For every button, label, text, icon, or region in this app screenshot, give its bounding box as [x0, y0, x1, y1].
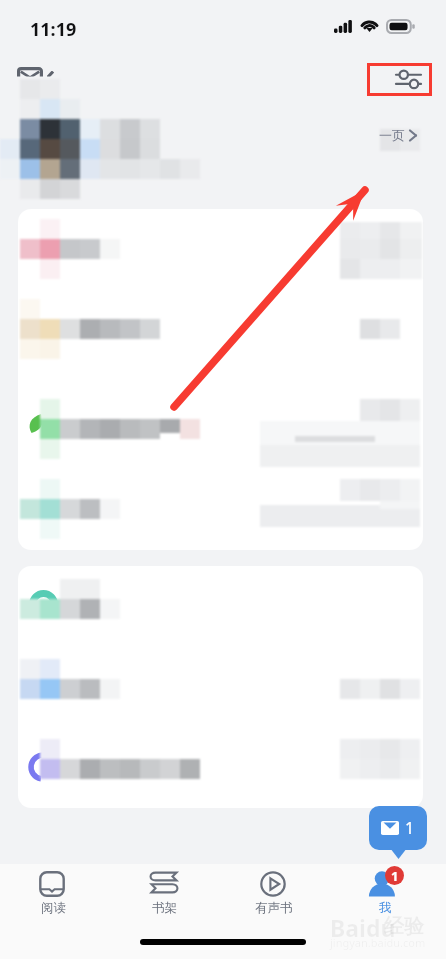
staticText: 我 — [379, 900, 392, 916]
button[interactable]: 一页 — [379, 127, 418, 143]
button[interactable]: 我 — [353, 866, 417, 922]
button[interactable]: 有声书 — [242, 866, 306, 922]
staticText: 1 — [405, 817, 415, 839]
staticText: 阅读 — [41, 900, 66, 916]
button[interactable]: 阅读 — [21, 866, 85, 922]
staticText: 有声书 — [255, 900, 293, 916]
staticText: 书架 — [152, 900, 177, 916]
staticText: 一页 — [379, 127, 405, 143]
staticText: Baidu — [330, 912, 396, 943]
button[interactable] — [18, 209, 423, 550]
button[interactable]: Messages — [369, 806, 427, 850]
button[interactable]: Settings — [367, 63, 432, 96]
staticText: 经验 — [384, 914, 424, 939]
staticText: jingyan.baidu.com — [330, 935, 426, 950]
staticText: 1 — [391, 867, 399, 885]
button[interactable] — [18, 566, 423, 808]
staticText: 11:19 — [30, 17, 77, 42]
button[interactable]: Reading history — [14, 62, 58, 88]
button[interactable]: 书架 — [132, 866, 196, 922]
